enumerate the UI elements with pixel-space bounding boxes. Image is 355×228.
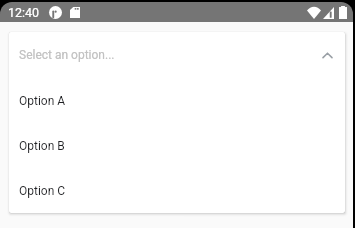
- other: Collapse options: [323, 52, 332, 59]
- staticText: Select an option...: [19, 48, 115, 62]
- button[interactable]: Option B: [9, 123, 345, 168]
- button[interactable]: Option A: [9, 78, 345, 123]
- staticText: Option A: [19, 94, 66, 108]
- staticText: Option C: [19, 184, 66, 198]
- button[interactable]: Select an option...: [9, 32, 345, 78]
- staticText: Option B: [19, 139, 65, 153]
- staticText: 12:40: [8, 5, 40, 20]
- button[interactable]: Option C: [9, 168, 345, 213]
